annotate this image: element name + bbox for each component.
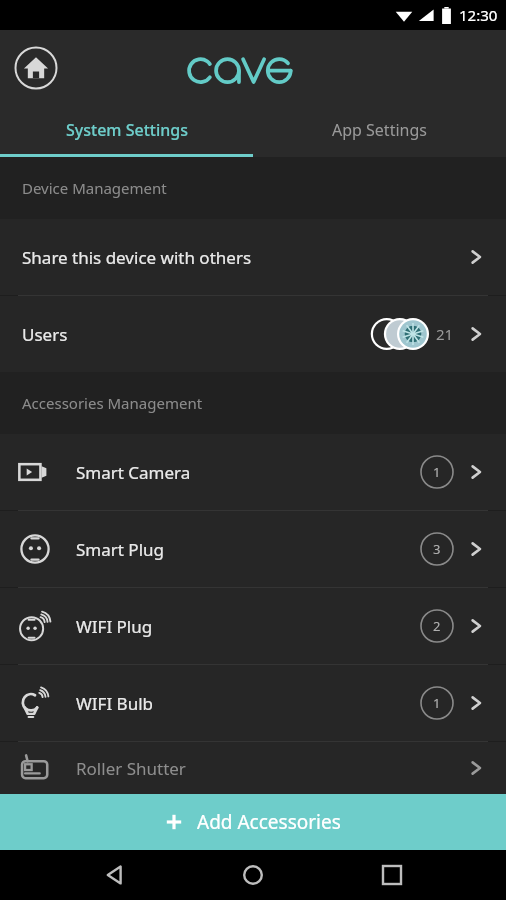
button[interactable]: Smart Plug — [0, 511, 506, 587]
button[interactable]: WIFI Plug — [0, 588, 506, 664]
staticText: Smart Camera — [76, 461, 420, 484]
button[interactable]: Users — [0, 296, 506, 372]
staticText: 1 — [433, 463, 441, 481]
button[interactable]: Share this device with others — [0, 219, 506, 295]
staticText: Device Management — [22, 178, 167, 198]
button[interactable]: WIFI Bulb — [0, 665, 506, 741]
button[interactable]: Home — [229, 851, 277, 899]
button[interactable]: System Settings — [0, 106, 253, 154]
staticText: Roller Shutter — [76, 757, 420, 780]
button[interactable]: Roller Shutter — [0, 742, 506, 794]
button[interactable]: Home — [12, 44, 60, 92]
button[interactable]: Add Accessories — [0, 794, 506, 850]
button[interactable]: Back — [91, 851, 139, 899]
staticText: Accessories Management — [22, 393, 203, 413]
staticText: 2 — [433, 617, 441, 635]
staticText: Users — [22, 323, 364, 346]
button[interactable]: Smart Camera — [0, 434, 506, 510]
staticText: System Settings — [66, 119, 188, 141]
staticText: 21 — [436, 324, 454, 344]
staticText: WIFI Bulb — [76, 692, 420, 715]
staticText: WIFI Plug — [76, 615, 420, 638]
staticText: 12:30 — [459, 5, 498, 25]
staticText: 3 — [433, 540, 441, 558]
button[interactable]: Recent apps — [368, 851, 416, 899]
staticText: 1 — [433, 694, 441, 712]
staticText: Smart Plug — [76, 538, 420, 561]
button[interactable]: App Settings — [253, 106, 506, 154]
staticText: Add Accessories — [197, 809, 341, 835]
staticText: App Settings — [332, 119, 427, 141]
staticText: Share this device with others — [22, 246, 466, 269]
